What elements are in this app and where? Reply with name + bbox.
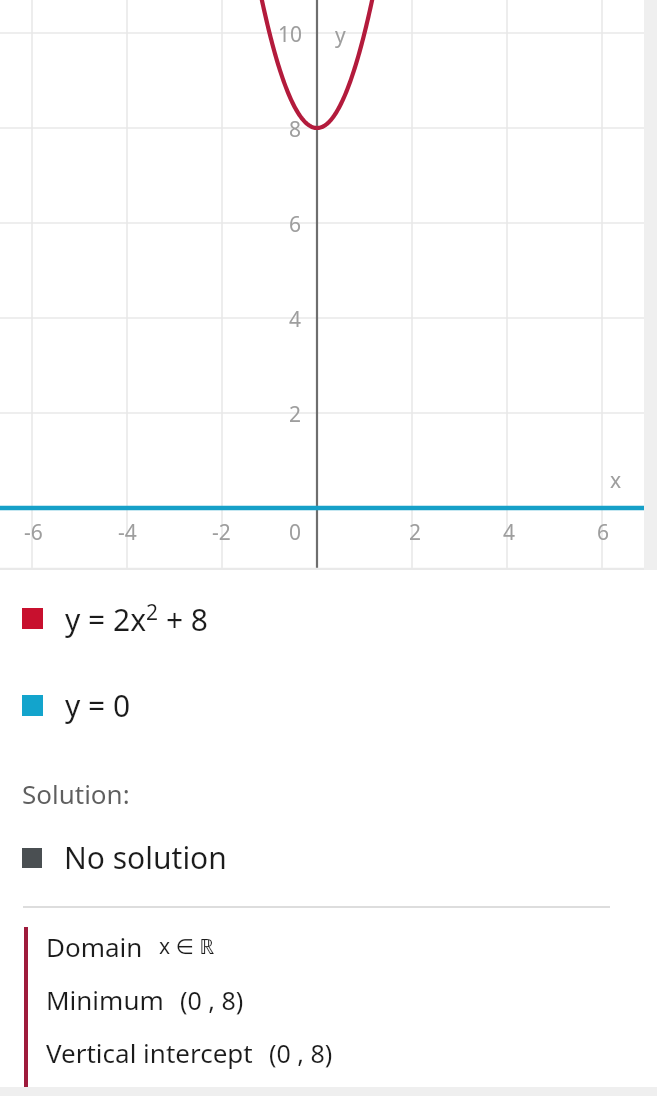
staticText: 2	[289, 400, 302, 429]
staticText: 6	[289, 210, 302, 239]
staticText: 4	[289, 305, 302, 334]
button[interactable]: Minimum	[46, 980, 244, 1019]
staticText: y	[335, 21, 346, 50]
button[interactable]: y = 0	[0, 679, 657, 732]
staticText: x ∈ ℝ	[159, 932, 215, 961]
staticText: Vertical intercept	[46, 1035, 253, 1070]
button[interactable]: Vertical intercept	[46, 1033, 333, 1072]
staticText: -6	[24, 518, 43, 547]
staticText: 4	[503, 518, 516, 547]
staticText: 8	[289, 115, 302, 144]
staticText: 0	[289, 518, 302, 547]
button[interactable]: Domain	[46, 927, 215, 966]
staticText: (0 , 8)	[180, 983, 244, 1017]
staticText: 10	[278, 20, 303, 49]
staticText: y = 2x2 + 8	[65, 598, 209, 639]
button[interactable]: y = 2x2 + 8	[0, 592, 657, 645]
staticText: -4	[118, 518, 137, 547]
staticText: x	[610, 466, 622, 495]
staticText: Domain	[46, 929, 143, 964]
staticText: -2	[212, 518, 231, 547]
staticText: (0 , 8)	[269, 1036, 333, 1070]
staticText: Solution:	[22, 776, 130, 811]
staticText: No solution	[64, 837, 227, 878]
staticText: 2	[409, 518, 422, 547]
staticText: Minimum	[46, 982, 164, 1017]
button[interactable]: No solution	[0, 833, 657, 882]
staticText: y = 0	[65, 685, 131, 726]
staticText: 6	[597, 518, 610, 547]
